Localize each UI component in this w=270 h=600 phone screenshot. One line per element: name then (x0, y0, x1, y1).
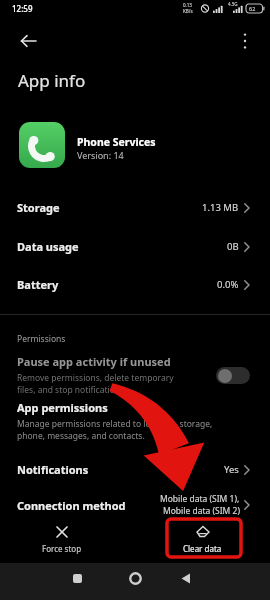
staticText: Clear data (183, 543, 222, 554)
staticText: Pause app activity if unused (17, 354, 171, 369)
staticText: Connection method (17, 498, 126, 513)
button[interactable] (19, 122, 65, 168)
staticText: App permissions (17, 400, 108, 415)
staticText: Mobile data (SIM 1), (160, 493, 240, 505)
staticText: Version: 14 (77, 149, 124, 161)
staticText: phone, messages, and contacts. (17, 430, 145, 442)
staticText: Force stop (42, 543, 82, 554)
staticText: Phone Services (77, 135, 156, 149)
button[interactable]: Storage (0, 193, 270, 221)
staticText: App info (18, 69, 86, 92)
staticText: 62 (249, 5, 256, 12)
button[interactable]: App permissions (0, 400, 270, 442)
staticText: files, and stop notifications (17, 384, 125, 396)
button[interactable]: Battery (0, 270, 270, 298)
button[interactable] (216, 367, 250, 384)
button[interactable]: Force stop (0, 518, 123, 562)
staticText: Remove permissions, delete temporary (17, 372, 174, 384)
button[interactable] (14, 30, 44, 52)
staticText: Data usage (17, 239, 79, 254)
staticText: Mobile data (SIM 2) (163, 505, 240, 517)
staticText: Battery (17, 277, 59, 292)
staticText: 12:59 (12, 3, 33, 14)
staticText: KB/s (183, 8, 193, 14)
button[interactable] (174, 567, 197, 589)
button[interactable] (234, 30, 256, 52)
button[interactable] (66, 567, 89, 589)
staticText: Notifications (17, 462, 89, 477)
button[interactable]: Connection method (0, 490, 270, 520)
staticText: Manage permissions related to location, … (17, 418, 213, 430)
staticText: Yes (224, 463, 239, 476)
button[interactable]: Clear data (135, 518, 270, 562)
button[interactable]: Notifications (0, 455, 270, 483)
staticText: 0B (227, 240, 239, 253)
staticText: Permissions (17, 333, 66, 345)
staticText: Storage (17, 200, 60, 215)
staticText: 0.13 (183, 2, 192, 8)
staticText: 1.13 MB (202, 201, 239, 214)
staticText: 4.5G (228, 1, 238, 7)
staticText: 0.0% (217, 278, 239, 291)
button[interactable] (124, 567, 147, 589)
button[interactable]: Data usage (0, 232, 270, 260)
button[interactable]: Pause app activity if unused (0, 354, 270, 396)
